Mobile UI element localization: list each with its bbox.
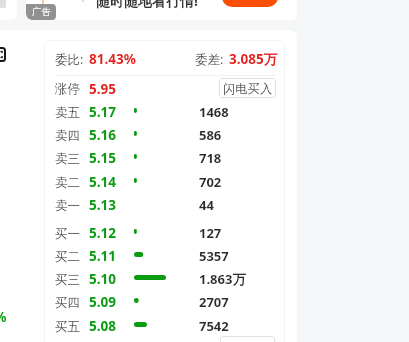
button[interactable]: 委比: (44, 41, 285, 75)
staticText: 5.10 (89, 270, 116, 288)
button[interactable] (220, 336, 275, 342)
staticText: 5.08 (89, 317, 116, 335)
staticText: 5.17 (89, 103, 116, 121)
staticText: 5.16 (89, 126, 116, 144)
button[interactable]: 卖二 (44, 170, 285, 193)
staticText: 卖三 (55, 151, 80, 167)
staticText: 广告 (32, 6, 51, 18)
staticText: 卖五 (55, 105, 80, 121)
staticText: 586 (199, 126, 222, 144)
staticText: 702 (199, 173, 222, 191)
button[interactable]: 买三 (44, 267, 285, 290)
staticText: 5.09 (89, 293, 116, 311)
button[interactable]: 买一 (44, 221, 285, 244)
staticText: 127 (199, 224, 222, 242)
staticText: 涨停 (55, 81, 80, 97)
button[interactable]: 卖五 (44, 100, 285, 123)
staticText: 3.085万 (229, 50, 278, 68)
staticText: 买五 (55, 319, 80, 335)
staticText: 买一 (55, 226, 80, 242)
staticText: 卖四 (55, 128, 80, 144)
staticText: 5.12 (89, 224, 116, 242)
button[interactable]: 卖一 (44, 193, 285, 216)
staticText: 卖一 (55, 198, 80, 214)
staticText: 买二 (55, 249, 80, 265)
staticText: 随时随地看行情! (96, 0, 198, 10)
staticText: 卖二 (55, 175, 80, 191)
staticText: 5357 (199, 247, 229, 265)
staticText: 委比: (55, 51, 84, 68)
staticText: 5.14 (89, 173, 116, 191)
staticText: 81.43% (89, 50, 136, 68)
staticText: 1468 (199, 103, 229, 121)
staticText: 买三 (55, 272, 80, 288)
staticText: 5.95 (89, 80, 116, 98)
staticText: 5.15 (89, 149, 116, 167)
button[interactable] (0, 0, 17, 20)
staticText: 1.863万 (199, 270, 246, 288)
staticText: 5.11 (89, 247, 116, 265)
button[interactable]: 买五 (44, 314, 285, 337)
button[interactable]: Fullscreen chart (0, 47, 6, 62)
button[interactable]: 卖四 (44, 123, 285, 146)
button[interactable]: 卖三 (44, 146, 285, 169)
staticText: 2707 (199, 293, 229, 311)
staticText: 买四 (55, 295, 80, 311)
staticText: 委差: (195, 51, 224, 68)
staticText: 闪电买入 (223, 81, 273, 96)
staticText: 718 (199, 149, 222, 167)
button[interactable]: 买二 (44, 244, 285, 267)
staticText: 7542 (199, 317, 229, 335)
button[interactable]: 买四 (44, 290, 285, 313)
staticText: -1.36% (0, 308, 7, 326)
button[interactable]: 随时随地看行情! (26, 0, 297, 20)
staticText: 5.13 (89, 196, 116, 214)
staticText: 44 (199, 196, 214, 214)
button[interactable]: 闪电买入 (219, 78, 276, 98)
